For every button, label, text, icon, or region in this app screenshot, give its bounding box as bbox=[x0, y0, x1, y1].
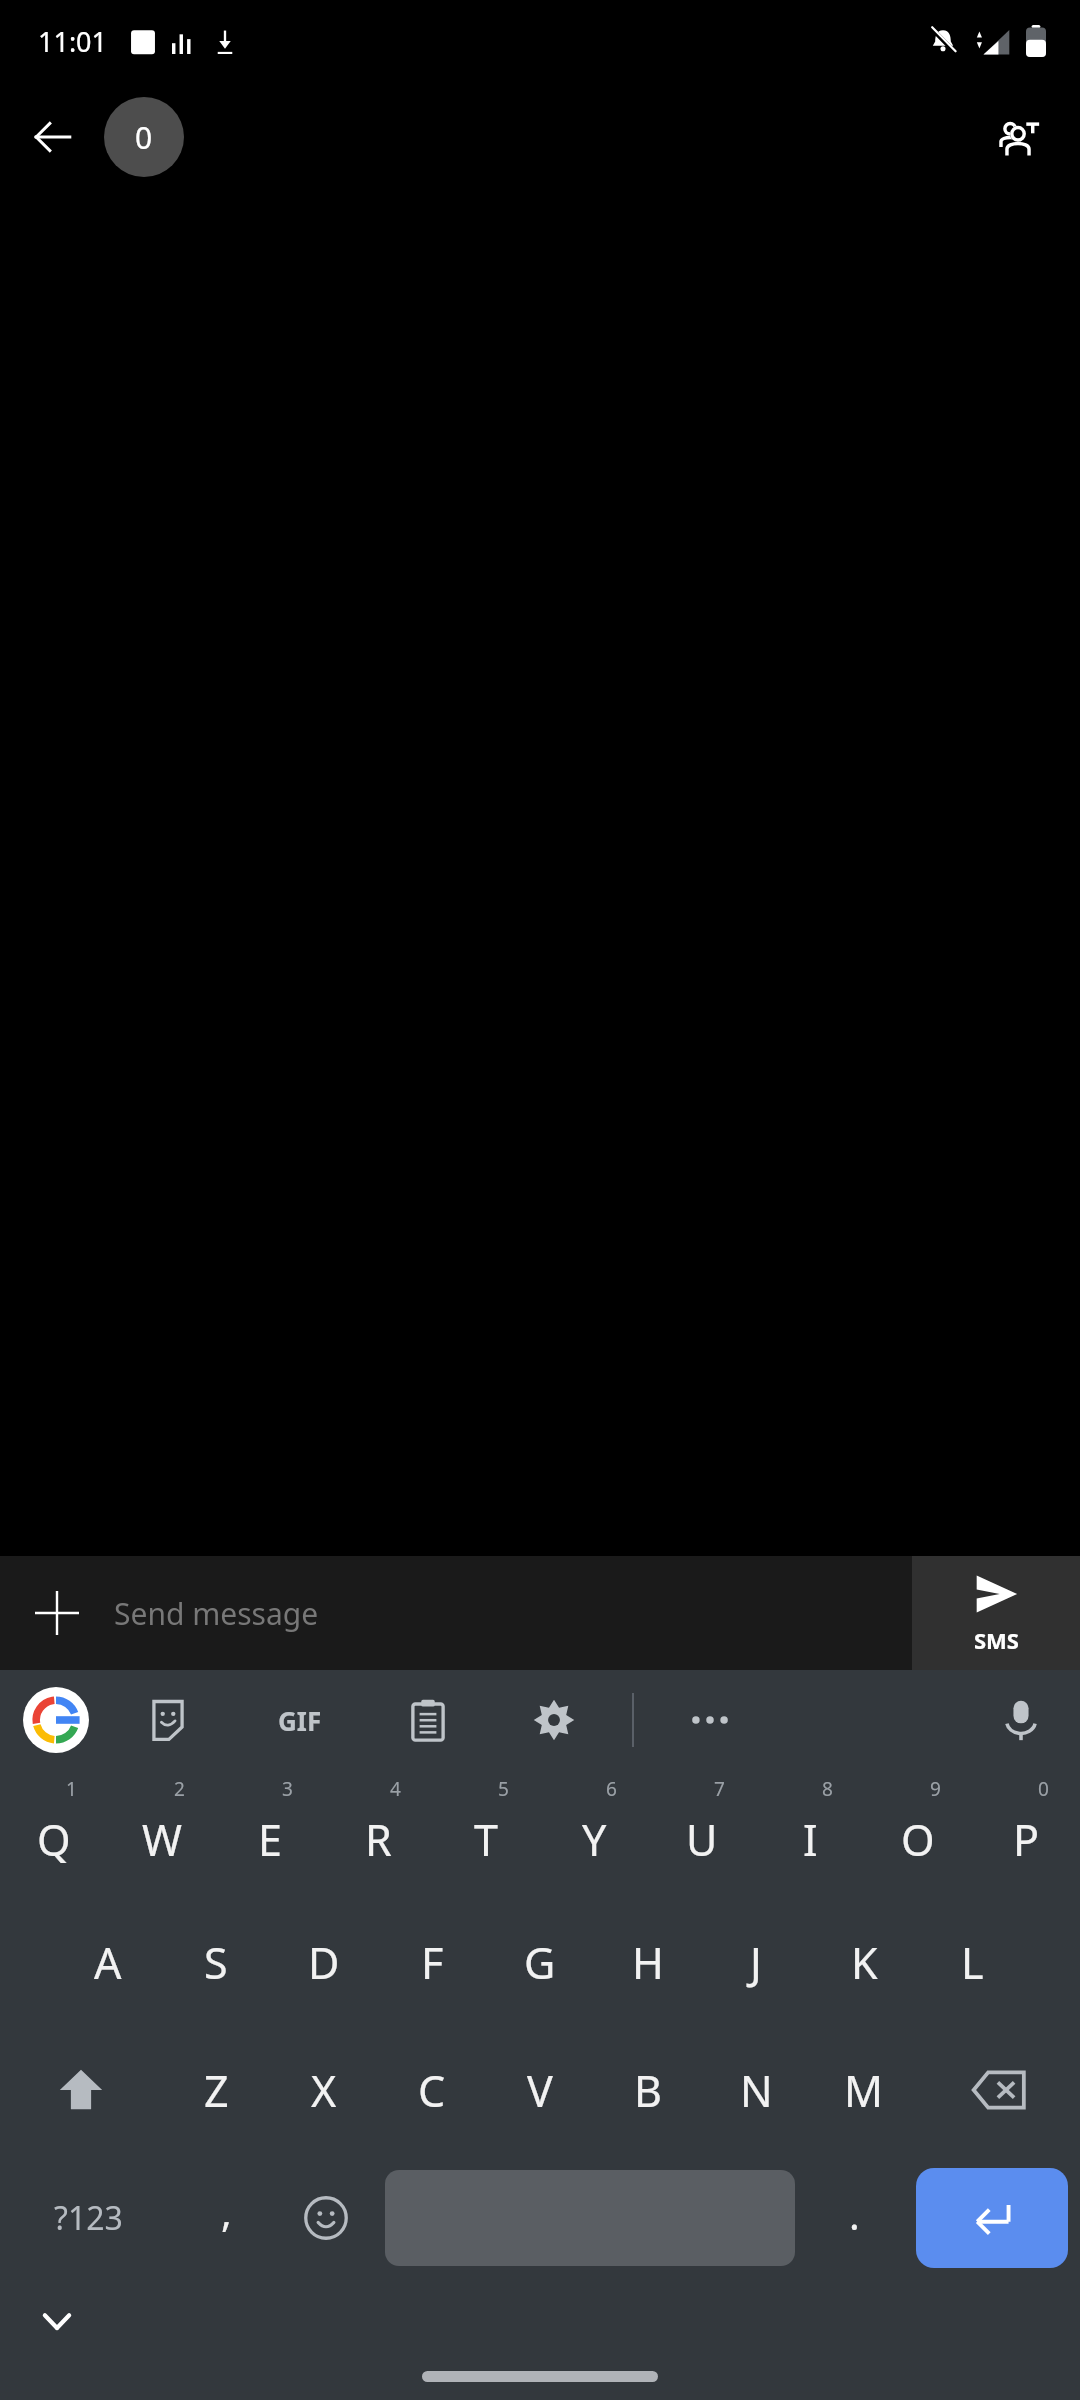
staticText: 4 bbox=[390, 1776, 401, 1802]
staticText: E bbox=[258, 1810, 282, 1869]
staticText: 6 bbox=[606, 1776, 617, 1802]
button[interactable]: 8 bbox=[756, 1770, 864, 1898]
button[interactable]: ?123 bbox=[0, 2154, 177, 2282]
button[interactable]: 4 bbox=[324, 1770, 432, 1898]
button[interactable]: Hide keyboard bbox=[26, 2290, 88, 2352]
staticText: 9 bbox=[930, 1776, 941, 1802]
staticText: Send message bbox=[114, 1593, 319, 1634]
button[interactable]: D bbox=[270, 1898, 378, 2026]
button[interactable]: Settings bbox=[522, 1688, 586, 1752]
staticText: 2 bbox=[174, 1776, 185, 1802]
button[interactable]: 0 bbox=[972, 1770, 1080, 1898]
button[interactable]: Z bbox=[162, 2026, 270, 2154]
staticText: N bbox=[740, 2061, 773, 2120]
button[interactable]: L bbox=[918, 1898, 1026, 2026]
staticText: 0 bbox=[135, 117, 153, 158]
staticText: 0 bbox=[1038, 1776, 1049, 1802]
staticText: J bbox=[750, 1933, 762, 1992]
button[interactable]: K bbox=[810, 1898, 918, 2026]
staticText: H bbox=[632, 1933, 664, 1992]
button[interactable]: N bbox=[702, 2026, 810, 2154]
button[interactable]: Attach bbox=[26, 1582, 88, 1644]
staticText: R bbox=[365, 1810, 392, 1869]
button[interactable]: Google search bbox=[22, 1686, 90, 1754]
staticText: K bbox=[851, 1933, 878, 1992]
button[interactable]: S bbox=[162, 1898, 270, 2026]
button[interactable]: F bbox=[378, 1898, 486, 2026]
button[interactable]: Backspace bbox=[918, 2026, 1080, 2154]
button[interactable]: 3 bbox=[216, 1770, 324, 1898]
staticText: 1 bbox=[66, 1776, 77, 1802]
button[interactable]: Stickers bbox=[136, 1688, 200, 1752]
button[interactable]: Enter bbox=[916, 2168, 1068, 2268]
staticText: , bbox=[221, 2184, 232, 2238]
button[interactable]: Emoji bbox=[276, 2154, 375, 2282]
staticText: U bbox=[686, 1810, 718, 1869]
button[interactable]: 7 bbox=[648, 1770, 756, 1898]
staticText: SMS bbox=[974, 1625, 1019, 1655]
staticText: M bbox=[844, 2061, 884, 2120]
button[interactable]: SMS bbox=[912, 1556, 1080, 1670]
button[interactable]: 1 bbox=[0, 1770, 108, 1898]
button[interactable]: G bbox=[486, 1898, 594, 2026]
button[interactable]: V bbox=[486, 2026, 594, 2154]
staticText: B bbox=[634, 2061, 662, 2120]
button[interactable]: . bbox=[805, 2154, 904, 2282]
staticText: P bbox=[1013, 1810, 1040, 1869]
staticText: Z bbox=[204, 2061, 229, 2120]
button[interactable]: Clipboard bbox=[396, 1688, 460, 1752]
button[interactable]: Add people bbox=[976, 95, 1060, 179]
staticText: . bbox=[849, 2187, 860, 2241]
button[interactable]: X bbox=[270, 2026, 378, 2154]
staticText: 11:01 bbox=[38, 23, 108, 60]
staticText: O bbox=[901, 1810, 935, 1869]
staticText: 7 bbox=[714, 1776, 725, 1802]
staticText: A bbox=[94, 1933, 122, 1992]
button[interactable]: 5 bbox=[432, 1770, 540, 1898]
button[interactable]: B bbox=[594, 2026, 702, 2154]
button[interactable]: M bbox=[810, 2026, 918, 2154]
staticText: 3 bbox=[282, 1776, 293, 1802]
staticText: S bbox=[204, 1933, 228, 1992]
button[interactable]: C bbox=[378, 2026, 486, 2154]
staticText: C bbox=[418, 2061, 446, 2120]
staticText: Y bbox=[582, 1810, 607, 1869]
staticText: X bbox=[311, 2061, 337, 2120]
staticText: L bbox=[961, 1933, 984, 1992]
button[interactable]: 2 bbox=[108, 1770, 216, 1898]
staticText: F bbox=[421, 1933, 444, 1992]
staticText: D bbox=[308, 1933, 340, 1992]
button[interactable]: GIF bbox=[264, 1684, 336, 1756]
staticText: 8 bbox=[822, 1776, 833, 1802]
button[interactable]: More options bbox=[678, 1688, 742, 1752]
button[interactable]: Voice input bbox=[988, 1687, 1054, 1753]
button[interactable]: Shift bbox=[0, 2026, 162, 2154]
button[interactable]: , bbox=[177, 2154, 276, 2282]
button[interactable]: J bbox=[702, 1898, 810, 2026]
staticText: GIF bbox=[278, 1703, 322, 1738]
staticText: 5 bbox=[498, 1776, 509, 1802]
staticText: I bbox=[803, 1810, 818, 1869]
button[interactable]: H bbox=[594, 1898, 702, 2026]
button[interactable]: 0 bbox=[104, 97, 184, 177]
staticText: G bbox=[524, 1933, 556, 1992]
staticText: V bbox=[527, 2061, 553, 2120]
staticText: W bbox=[142, 1810, 182, 1869]
button[interactable]: 9 bbox=[864, 1770, 972, 1898]
button[interactable]: A bbox=[54, 1898, 162, 2026]
staticText: T bbox=[474, 1810, 498, 1869]
staticText: Q bbox=[37, 1810, 71, 1869]
button[interactable]: Back bbox=[14, 98, 92, 176]
staticText: ?123 bbox=[54, 2196, 123, 2240]
button[interactable]: 6 bbox=[540, 1770, 648, 1898]
button[interactable]: Attach bbox=[0, 1556, 912, 1670]
